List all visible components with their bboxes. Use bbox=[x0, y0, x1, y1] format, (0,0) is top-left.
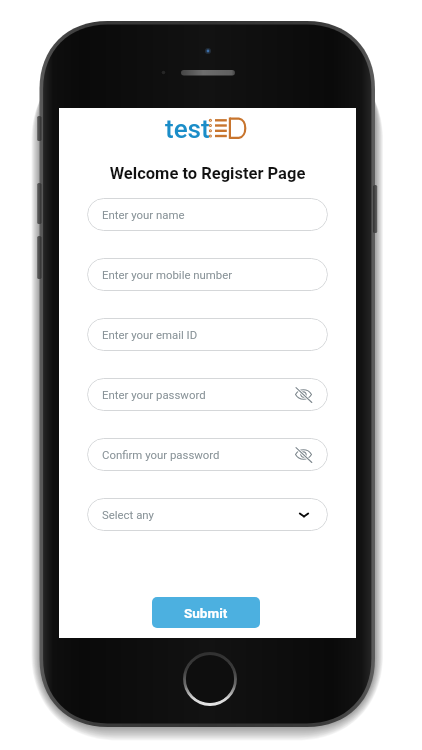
button[interactable]: Enter your name bbox=[87, 198, 328, 231]
staticText: test bbox=[165, 114, 210, 138]
staticText: Select any bbox=[102, 508, 155, 521]
staticText: Enter your name bbox=[102, 208, 185, 221]
staticText: Submit bbox=[184, 605, 228, 621]
staticText: Confirm your password bbox=[102, 448, 220, 461]
button[interactable]: Submit bbox=[152, 597, 260, 628]
button[interactable]: Enter your password bbox=[87, 378, 328, 411]
button[interactable]: Enter your mobile number bbox=[87, 258, 328, 291]
button[interactable]: Confirm your password bbox=[87, 438, 328, 471]
staticText: Enter your mobile number bbox=[102, 268, 233, 281]
staticText: Enter your email ID bbox=[102, 328, 198, 341]
button[interactable]: Toggle password visibility bbox=[295, 446, 312, 463]
button[interactable]: Open dropdown bbox=[298, 509, 310, 521]
button[interactable]: Enter your email ID bbox=[87, 318, 328, 351]
staticText: Enter your password bbox=[102, 388, 206, 401]
button[interactable]: Select any bbox=[87, 498, 328, 531]
staticText: Welcome to Register Page bbox=[59, 164, 356, 183]
button[interactable]: Toggle password visibility bbox=[295, 386, 312, 403]
